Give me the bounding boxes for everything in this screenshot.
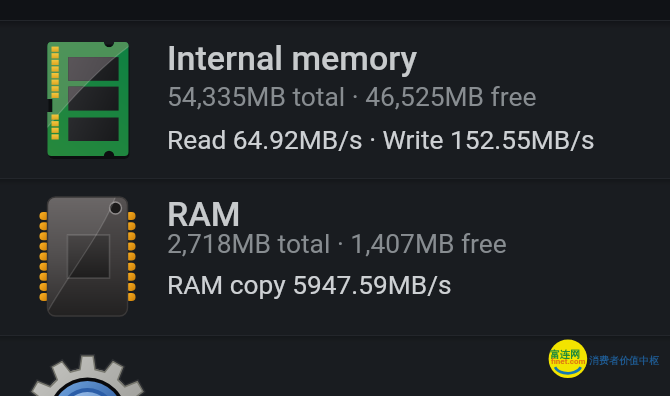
- staticText: RAM: [167, 194, 241, 234]
- staticText: Read 64.92MB/s · Write 152.55MB/s: [167, 125, 595, 156]
- staticText: RAM copy 5947.59MB/s: [167, 270, 452, 301]
- staticText: Internal memory: [167, 38, 418, 78]
- button[interactable]: System settings: [0, 336, 670, 396]
- button[interactable]: RAM: [0, 179, 670, 335]
- button[interactable]: Internal memory: [0, 21, 670, 178]
- staticText: 2,718MB total · 1,407MB free: [167, 229, 507, 260]
- staticText: 富连网: [550, 348, 580, 361]
- staticText: finet.com: [551, 357, 586, 366]
- staticText: 54,335MB total · 46,525MB free: [167, 82, 537, 113]
- staticText: 消费者价值中枢: [589, 354, 659, 367]
